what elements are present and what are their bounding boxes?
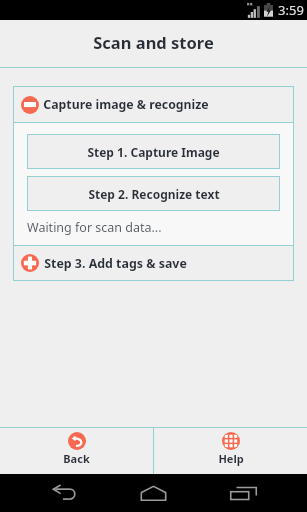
button[interactable]: Capture image & recognize: [14, 87, 293, 122]
staticText: Help: [218, 451, 244, 466]
staticText: Back: [63, 451, 90, 466]
button[interactable]: Home: [108, 474, 199, 512]
staticText: Step 3. Add tags & save: [44, 255, 187, 272]
button[interactable]: Help: [154, 428, 307, 474]
staticText: Step 2. Recognize text: [88, 186, 220, 202]
button[interactable]: Back: [18, 474, 109, 512]
button[interactable]: Back: [0, 428, 153, 474]
staticText: 3:59: [278, 1, 304, 19]
button[interactable]: Step 2. Recognize text: [28, 177, 279, 210]
staticText: Capture image & recognize: [43, 96, 209, 113]
staticText: Waiting for scan data...: [27, 219, 162, 236]
staticText: Step 1. Capture Image: [87, 144, 220, 160]
button[interactable]: Recent apps: [198, 474, 289, 512]
button[interactable]: Step 1. Capture Image: [28, 135, 279, 168]
staticText: Scan and store: [93, 31, 214, 53]
button[interactable]: Step 3. Add tags & save: [14, 246, 293, 280]
